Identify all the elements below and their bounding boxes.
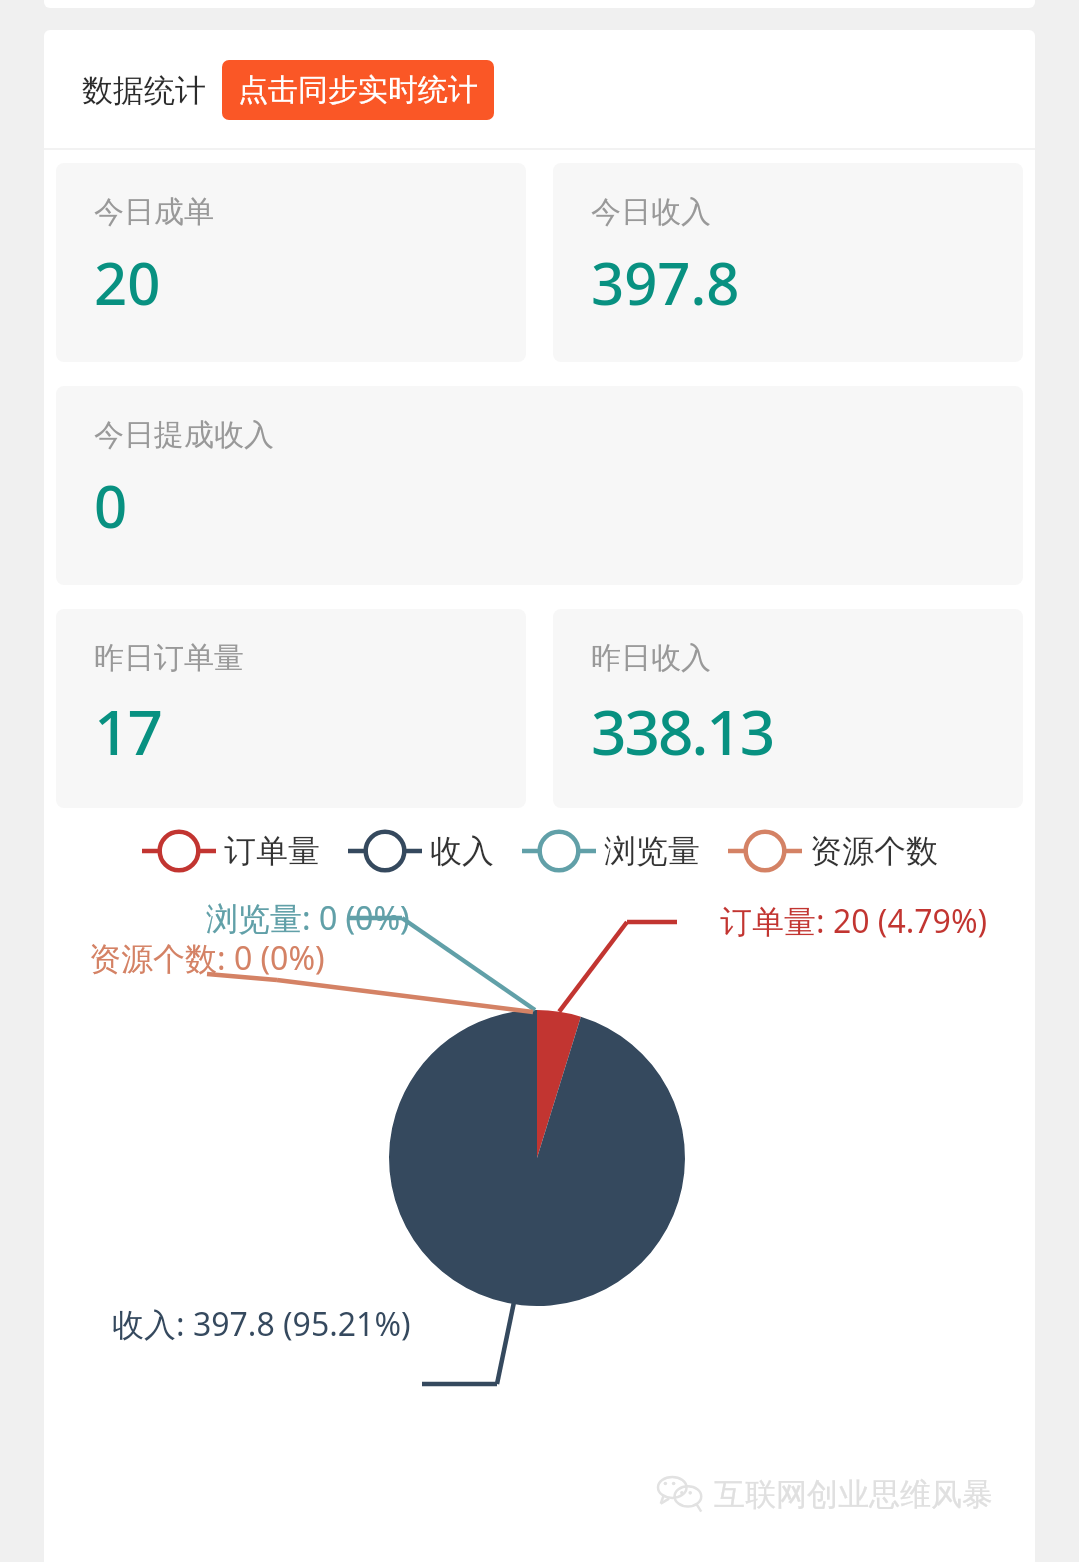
staticText: 订单量 bbox=[224, 831, 320, 871]
button[interactable]: 今日提成收入 bbox=[56, 386, 1023, 585]
staticText: 互联网创业思维风暴 bbox=[714, 1475, 993, 1514]
staticText: 订单量: 20 (4.79%) bbox=[720, 899, 988, 943]
staticText: 20 bbox=[94, 243, 161, 322]
button[interactable]: 点击同步实时统计 bbox=[222, 60, 494, 120]
staticText: 338.13 bbox=[591, 689, 774, 773]
staticText: 资源个数 bbox=[810, 831, 938, 871]
staticText: 昨日订单量 bbox=[94, 639, 244, 677]
staticText: 今日成单 bbox=[94, 193, 214, 231]
staticText: 今日提成收入 bbox=[94, 416, 274, 454]
button[interactable]: 订单量 bbox=[142, 828, 320, 874]
button[interactable]: 浏览量 bbox=[522, 828, 700, 874]
button[interactable]: 昨日收入 bbox=[553, 609, 1023, 808]
staticText: 397.8 bbox=[591, 243, 740, 322]
button[interactable]: 资源个数 bbox=[728, 828, 938, 874]
staticText: 浏览量: 0 (0%) bbox=[206, 896, 410, 940]
staticText: 17 bbox=[94, 689, 161, 773]
staticText: 昨日收入 bbox=[591, 639, 711, 677]
staticText: 资源个数: 0 (0%) bbox=[89, 936, 325, 980]
staticText: 收入: 397.8 (95.21%) bbox=[112, 1302, 411, 1346]
staticText: 数据统计 bbox=[82, 71, 206, 110]
button[interactable]: 今日收入 bbox=[553, 163, 1023, 362]
staticText: 收入 bbox=[430, 831, 494, 871]
staticText: 0 bbox=[94, 466, 128, 545]
staticText: 今日收入 bbox=[591, 193, 711, 231]
staticText: 浏览量 bbox=[604, 831, 700, 871]
button[interactable]: 今日成单 bbox=[56, 163, 526, 362]
button[interactable]: 昨日订单量 bbox=[56, 609, 526, 808]
staticText: 点击同步实时统计 bbox=[238, 71, 478, 109]
button[interactable]: 收入 bbox=[348, 828, 494, 874]
